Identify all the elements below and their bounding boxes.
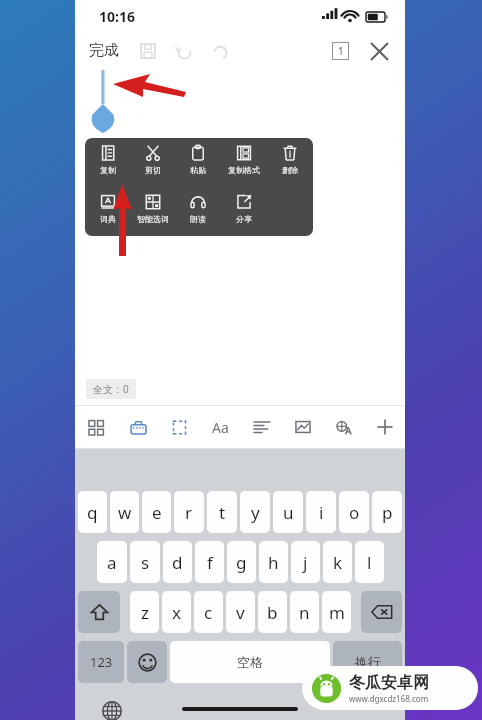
button[interactable]: r xyxy=(174,491,204,533)
staticText: y xyxy=(251,501,260,524)
staticText: s xyxy=(141,551,150,574)
button[interactable]: l xyxy=(355,541,384,583)
staticText: 冬瓜安卓网 xyxy=(349,673,429,693)
staticText: p xyxy=(382,501,393,524)
button[interactable]: w xyxy=(110,491,139,533)
button[interactable]: Pages xyxy=(325,36,355,66)
button[interactable]: Backspace xyxy=(361,591,402,633)
button[interactable]: t xyxy=(207,491,237,533)
staticText: 空格 xyxy=(237,654,263,670)
staticText: d xyxy=(172,551,183,574)
staticText: f xyxy=(207,551,213,574)
button[interactable]: Select xyxy=(159,406,200,448)
button[interactable]: 删除 xyxy=(267,138,313,187)
staticText: Aa xyxy=(212,418,229,437)
button[interactable]: z xyxy=(130,591,159,633)
button[interactable]: Emoji xyxy=(127,641,167,683)
button[interactable]: 空格 xyxy=(170,641,330,683)
button[interactable]: k xyxy=(323,541,352,583)
staticText: j xyxy=(303,551,308,574)
staticText: m xyxy=(329,601,345,624)
button[interactable]: Font xyxy=(200,406,241,448)
button[interactable]: d xyxy=(163,541,192,583)
staticText: a xyxy=(107,551,117,574)
staticText: g xyxy=(236,551,247,574)
button[interactable]: 分享 xyxy=(221,187,267,236)
staticText: b xyxy=(267,601,278,624)
button[interactable]: Undo xyxy=(171,38,197,64)
staticText: t xyxy=(219,501,226,524)
button[interactable]: u xyxy=(273,491,303,533)
staticText: q xyxy=(87,501,98,524)
button[interactable]: v xyxy=(226,591,255,633)
button[interactable]: p xyxy=(372,491,402,533)
staticText: 完成 xyxy=(89,41,119,60)
staticText: z xyxy=(141,601,149,624)
button[interactable]: 复制格式 xyxy=(221,138,267,187)
staticText: www.dgxcdz168.com xyxy=(349,693,429,704)
button[interactable]: a xyxy=(97,541,127,583)
button[interactable]: Change keyboard xyxy=(97,697,127,720)
button[interactable]: Image xyxy=(282,406,323,448)
staticText: v xyxy=(236,601,245,624)
button[interactable]: e xyxy=(142,491,171,533)
staticText: 1 xyxy=(338,44,344,58)
button[interactable]: Align xyxy=(241,406,282,448)
button[interactable]: 粘贴 xyxy=(175,138,221,187)
staticText: c xyxy=(204,601,213,624)
staticText: 全文：0 xyxy=(93,382,129,396)
button[interactable]: 朗读 xyxy=(175,187,221,236)
button[interactable]: 完成 xyxy=(75,37,133,64)
staticText: 复制 xyxy=(100,165,116,175)
staticText: k xyxy=(333,551,343,574)
button[interactable]: b xyxy=(258,591,287,633)
button[interactable]: Numbers xyxy=(78,641,124,683)
button[interactable]: c xyxy=(194,591,223,633)
button[interactable]: 剪切 xyxy=(130,138,175,187)
button[interactable]: j xyxy=(291,541,320,583)
staticText: 词典 xyxy=(100,214,116,224)
button[interactable]: h xyxy=(259,541,288,583)
staticText: 智能选词 xyxy=(137,214,169,224)
button[interactable]: 全文：0 xyxy=(86,379,136,399)
staticText: i xyxy=(319,501,324,524)
button[interactable]: Shift xyxy=(78,591,120,633)
staticText: 粘贴 xyxy=(190,165,206,175)
button[interactable]: o xyxy=(339,491,369,533)
button[interactable]: i xyxy=(306,491,336,533)
button[interactable]: n xyxy=(290,591,319,633)
button[interactable]: s xyxy=(130,541,160,583)
button[interactable]: m xyxy=(322,591,351,633)
staticText: e xyxy=(152,501,162,524)
button[interactable]: Redo xyxy=(207,38,233,64)
button[interactable]: Toolbox xyxy=(117,406,159,448)
button[interactable]: Enter xyxy=(333,641,402,683)
button[interactable]: 复制 xyxy=(85,138,130,187)
staticText: 分享 xyxy=(236,214,252,224)
staticText: x xyxy=(172,601,181,624)
button[interactable]: Templates xyxy=(75,406,117,448)
staticText: r xyxy=(185,501,193,524)
staticText: 换行 xyxy=(355,654,381,670)
staticText: 复制格式 xyxy=(228,165,260,175)
staticText: u xyxy=(283,501,294,524)
staticText: n xyxy=(299,601,310,624)
button[interactable]: 智能选词 xyxy=(130,187,175,236)
staticText: 剪切 xyxy=(145,165,161,175)
button[interactable]: q xyxy=(78,491,107,533)
button[interactable]: Add xyxy=(364,406,405,448)
staticText: 123 xyxy=(90,653,113,671)
button[interactable]: x xyxy=(162,591,191,633)
button[interactable]: Save xyxy=(133,36,163,66)
button[interactable]: y xyxy=(240,491,270,533)
staticText: 朗读 xyxy=(190,214,206,224)
button[interactable]: 词典 xyxy=(85,187,130,236)
staticText: l xyxy=(367,551,372,574)
button[interactable]: Close xyxy=(363,35,395,67)
staticText: w xyxy=(118,501,132,524)
button[interactable]: f xyxy=(195,541,224,583)
button[interactable]: Translate xyxy=(323,406,364,448)
staticText: o xyxy=(349,501,360,524)
button[interactable]: g xyxy=(227,541,256,583)
staticText: h xyxy=(268,551,279,574)
